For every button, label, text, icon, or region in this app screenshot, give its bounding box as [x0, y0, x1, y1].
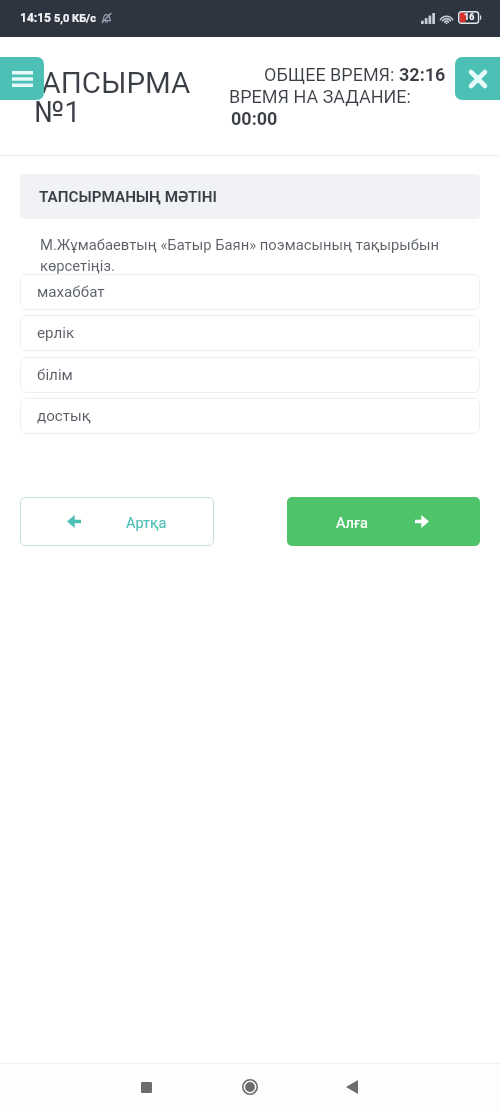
staticText: білім: [37, 366, 73, 384]
staticText: Артқа: [126, 515, 167, 532]
staticText: 16: [464, 12, 475, 23]
button[interactable]: Home: [228, 1065, 272, 1109]
button[interactable]: Open menu: [0, 57, 44, 100]
button[interactable]: Back: [330, 1065, 374, 1109]
staticText: 32:16: [399, 64, 446, 85]
staticText: ОБЩЕЕ ВРЕМЯ:: [264, 64, 399, 85]
button[interactable]: достық: [20, 398, 480, 434]
button[interactable]: білім: [20, 357, 480, 393]
button[interactable]: Артқа: [20, 497, 214, 546]
staticText: №1: [34, 95, 81, 130]
staticText: ТАПСЫРМА: [25, 66, 191, 101]
staticText: ТАПСЫРМАНЫҢ МӘТІНІ: [39, 188, 217, 206]
staticText: 14:15: [20, 11, 51, 25]
staticText: махаббат: [37, 283, 105, 301]
staticText: Алға: [336, 515, 368, 532]
staticText: 00:00: [231, 108, 278, 129]
button[interactable]: махаббат: [20, 274, 480, 310]
staticText: ерлік: [37, 324, 75, 342]
staticText: достық: [37, 407, 91, 425]
button[interactable]: ерлік: [20, 315, 480, 351]
staticText: ВРЕМЯ НА ЗАДАНИЕ:: [229, 86, 411, 107]
button[interactable]: Recent apps: [124, 1065, 168, 1109]
button[interactable]: Close: [455, 57, 500, 100]
staticText: М.Жұмабаевтың «Батыр Баян» поэмасының та…: [40, 236, 442, 274]
button[interactable]: Алға: [287, 497, 480, 546]
staticText: 5,0 КБ/с: [54, 12, 96, 25]
